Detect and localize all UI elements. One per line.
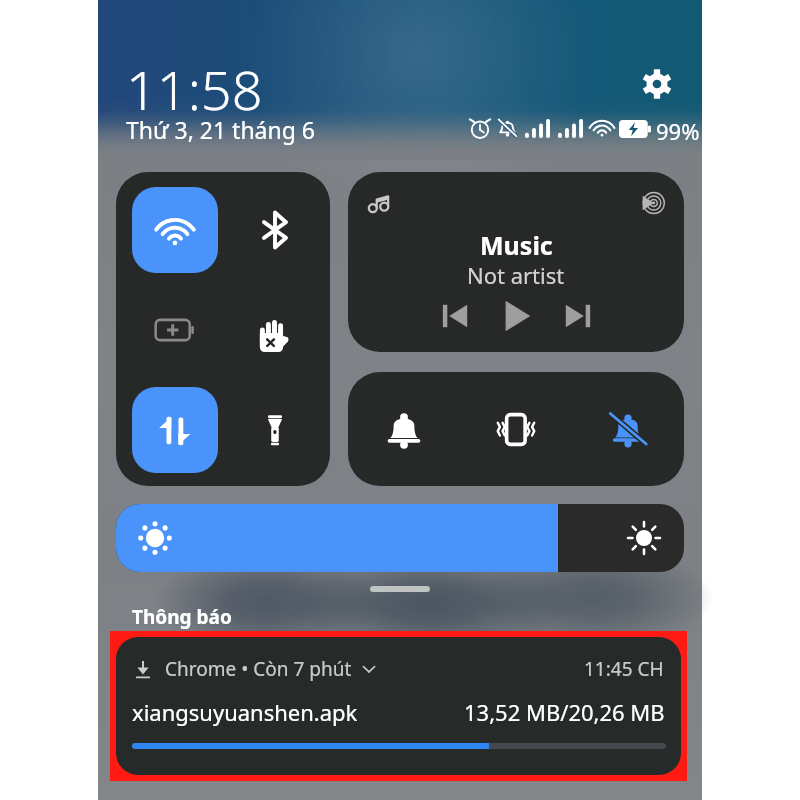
button[interactable]: Play — [493, 292, 541, 340]
button[interactable]: Chrome • Còn 7 phút — [116, 637, 681, 775]
staticText: Not artist — [467, 260, 565, 290]
button[interactable]: Do not disturb — [232, 287, 318, 373]
button[interactable]: Vibrate — [460, 372, 572, 486]
button[interactable]: Music — [348, 172, 684, 352]
button[interactable]: Previous — [433, 294, 477, 338]
staticText: 11:45 CH — [584, 656, 664, 682]
button[interactable]: Mobile data — [132, 387, 218, 473]
button[interactable]: Silent — [572, 372, 684, 486]
button[interactable]: Battery saver — [132, 287, 218, 373]
button[interactable]: Bluetooth — [232, 187, 318, 273]
staticText: Chrome • Còn 7 phút — [165, 656, 352, 682]
staticText: xiangsuyuanshen.apk — [132, 697, 358, 727]
staticText: Music — [480, 228, 553, 262]
staticText: Thông báo — [132, 604, 232, 630]
button[interactable]: Brightness — [116, 504, 684, 572]
button[interactable]: Flashlight — [232, 387, 318, 473]
staticText: 11:58 — [126, 52, 263, 126]
staticText: 99% — [656, 116, 700, 146]
button[interactable]: Settings — [636, 63, 677, 104]
button[interactable]: Next — [556, 294, 600, 338]
staticText: 13,52 MB/20,26 MB — [464, 697, 665, 727]
staticText: Thứ 3, 21 tháng 6 — [126, 114, 315, 145]
button[interactable]: Wi-Fi — [132, 187, 218, 273]
button[interactable]: Ring — [348, 372, 460, 486]
